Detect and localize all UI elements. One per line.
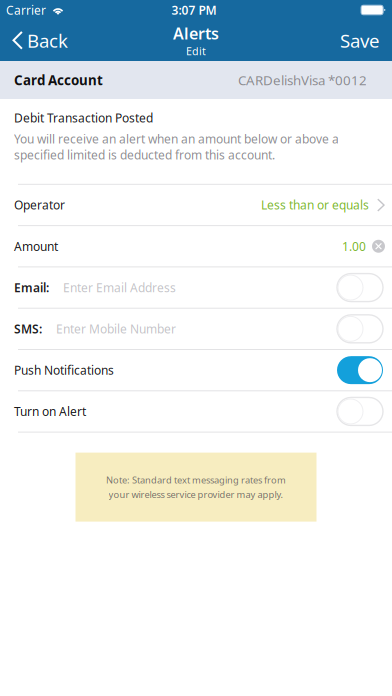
staticText: 1.00 (342, 238, 366, 254)
staticText: Note: Standard text messaging rates from (106, 474, 286, 486)
staticText: Push Notifications (14, 362, 114, 378)
button[interactable]: Push Notifications (337, 356, 383, 384)
staticText: your wireless service provider may apply… (108, 488, 283, 500)
staticText: Carrier (6, 2, 46, 18)
staticText: SMS: (14, 321, 42, 337)
button[interactable]: Clear amount (372, 240, 385, 253)
staticText: Operator (14, 197, 65, 213)
staticText: CARDelishVisa *0012 (238, 71, 367, 89)
staticText: Amount (14, 238, 58, 254)
staticText: Card Account (14, 71, 103, 89)
button[interactable]: Email alerts (337, 274, 383, 302)
button[interactable]: Save (328, 20, 392, 60)
staticText: Debit Transaction Posted (14, 110, 153, 126)
staticText: Enter Email Address (63, 280, 176, 295)
staticText: Back (27, 28, 68, 53)
staticText: Enter Mobile Number (56, 321, 176, 337)
button[interactable]: Back (0, 20, 76, 60)
staticText: Edit (186, 44, 206, 58)
button[interactable]: SMS alerts (337, 315, 383, 343)
staticText: Turn on Alert (14, 403, 86, 419)
staticText: Save (340, 28, 380, 53)
staticText: You will receive an alert when an amount… (14, 131, 339, 163)
staticText: 3:07 PM (171, 2, 216, 18)
staticText: Alerts (173, 23, 219, 44)
button[interactable]: Turn on Alert (337, 397, 383, 425)
button[interactable]: Operator (0, 185, 392, 225)
staticText: Less than or equals (261, 197, 369, 213)
staticText: Email: (14, 280, 49, 295)
